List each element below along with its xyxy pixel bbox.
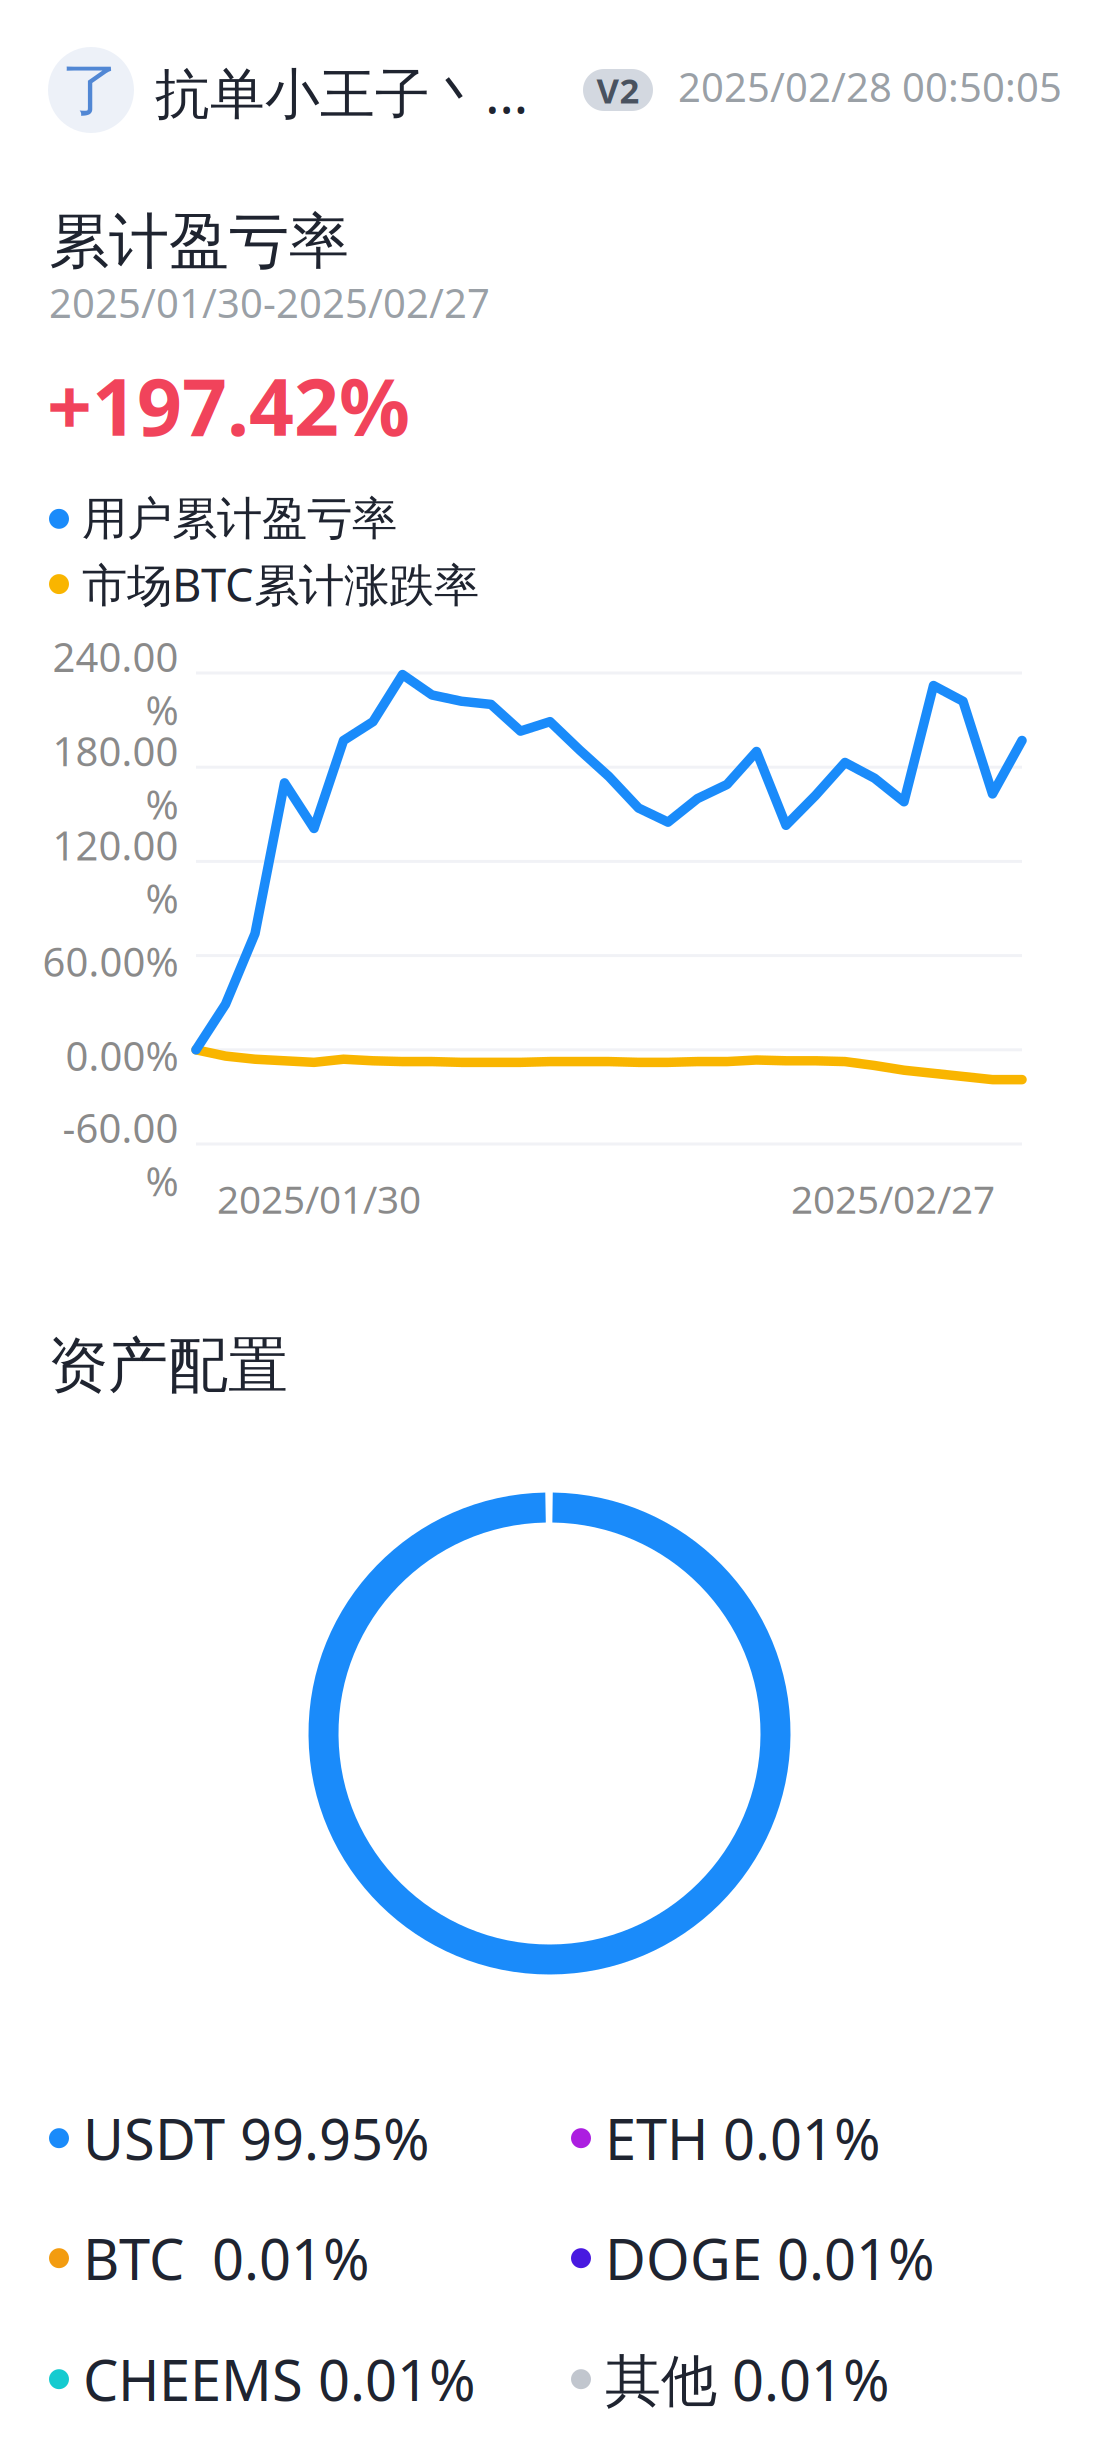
staticText: 累计盈亏率	[49, 205, 349, 279]
button[interactable]: USDT 99.95%	[49, 2101, 430, 2175]
staticText: 2025/01/30-2025/02/27	[49, 276, 490, 329]
staticText: 2025/02/27	[791, 1173, 995, 1224]
button[interactable]: 抗单小王子丶…	[155, 56, 528, 129]
button[interactable]: ETH 0.01%	[571, 2101, 881, 2175]
staticText: 240.00 %	[52, 630, 178, 736]
button[interactable]: 其他 0.01%	[571, 2342, 890, 2416]
staticText: ETH 0.01%	[605, 2101, 881, 2175]
button[interactable]: V2	[583, 69, 653, 111]
staticText: 120.00 %	[52, 818, 178, 925]
staticText: 抗单小王子丶…	[155, 56, 528, 129]
staticText: 其他 0.01%	[605, 2342, 890, 2416]
staticText: CHEEMS 0.01%	[83, 2342, 476, 2416]
staticText: 2025/02/28 00:50:05	[678, 60, 1062, 113]
button[interactable]: CHEEMS 0.01%	[49, 2342, 476, 2416]
staticText: 了	[61, 54, 120, 126]
staticText: USDT 99.95%	[83, 2101, 430, 2175]
staticText: -60.00 %	[62, 1101, 178, 1207]
staticText: 0.00%	[65, 1029, 178, 1082]
staticText: 60.00%	[42, 935, 178, 988]
staticText: BTC 0.01%	[83, 2221, 370, 2295]
staticText: 市场BTC累计涨跌率	[82, 554, 479, 614]
staticText: DOGE 0.01%	[605, 2221, 935, 2295]
staticText: 2025/01/30	[217, 1173, 421, 1224]
staticText: 180.00 %	[52, 724, 178, 830]
staticText: +197.42%	[47, 353, 410, 457]
staticText: V2	[596, 67, 639, 113]
staticText: 资产配置	[48, 1329, 288, 1403]
button[interactable]: BTC 0.01%	[49, 2221, 370, 2295]
button[interactable]: DOGE 0.01%	[571, 2221, 935, 2295]
staticText: 用户累计盈亏率	[82, 491, 397, 547]
button[interactable]: Profile avatar	[48, 47, 134, 133]
